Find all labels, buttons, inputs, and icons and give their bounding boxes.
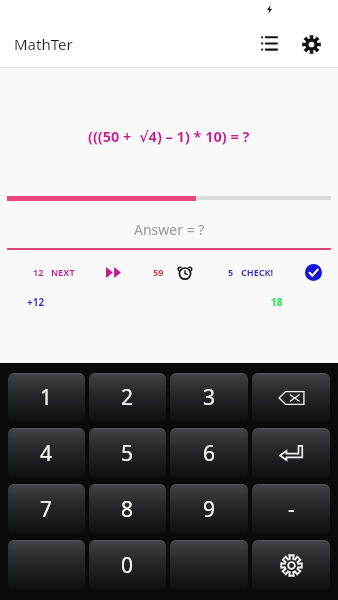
button[interactable]: 5 bbox=[89, 428, 166, 478]
staticText: 18 bbox=[271, 295, 283, 309]
staticText: +12 bbox=[27, 295, 45, 309]
staticText: 2 bbox=[121, 383, 134, 412]
button[interactable]: Skip to next bbox=[100, 261, 126, 283]
button[interactable]: 5 bbox=[228, 266, 273, 278]
staticText: 5 bbox=[228, 266, 234, 278]
button[interactable]: Answer = ? bbox=[0, 217, 338, 250]
button[interactable]: 8 bbox=[89, 484, 166, 534]
button[interactable]: 3 bbox=[170, 373, 248, 422]
button[interactable]: Minus bbox=[252, 484, 330, 534]
staticText: CHECK! bbox=[241, 266, 273, 278]
staticText: Answer = ? bbox=[134, 220, 205, 239]
staticText: 5 bbox=[121, 439, 134, 468]
button[interactable]: Blank key bbox=[170, 540, 248, 590]
button[interactable]: Blank key bbox=[8, 540, 85, 590]
staticText: 4 bbox=[40, 439, 53, 468]
button[interactable]: 7 bbox=[8, 484, 85, 534]
staticText: 1 bbox=[40, 383, 53, 412]
staticText: NEXT bbox=[51, 266, 75, 278]
button[interactable]: 6 bbox=[170, 428, 248, 478]
staticText: - bbox=[288, 495, 295, 524]
staticText: 8 bbox=[121, 495, 134, 524]
button[interactable]: Enter bbox=[252, 428, 330, 478]
staticText: 3 bbox=[203, 383, 216, 412]
staticText: 12 bbox=[33, 266, 44, 278]
button[interactable]: Backspace bbox=[252, 373, 330, 422]
button[interactable]: Check answer bbox=[300, 261, 326, 283]
button[interactable]: 9 bbox=[170, 484, 248, 534]
button[interactable]: 2 bbox=[89, 373, 166, 422]
button[interactable]: Settings bbox=[289, 22, 333, 66]
button[interactable]: 12 bbox=[33, 266, 75, 278]
staticText: 7 bbox=[40, 495, 53, 524]
button[interactable]: 0 bbox=[89, 540, 166, 590]
button[interactable]: 4 bbox=[8, 428, 85, 478]
button[interactable]: Timer bbox=[173, 261, 197, 283]
button[interactable]: Records list bbox=[249, 24, 289, 64]
staticText: MathTer bbox=[14, 34, 73, 54]
staticText: 9 bbox=[203, 495, 216, 524]
staticText: (((50 + √4) – 1) * 10) = ? bbox=[88, 126, 250, 146]
staticText: 59 bbox=[153, 266, 164, 278]
staticText: 6 bbox=[203, 439, 216, 468]
staticText: 0 bbox=[121, 551, 134, 580]
button[interactable]: 1 bbox=[8, 373, 85, 422]
button[interactable]: Settings bbox=[252, 540, 330, 590]
